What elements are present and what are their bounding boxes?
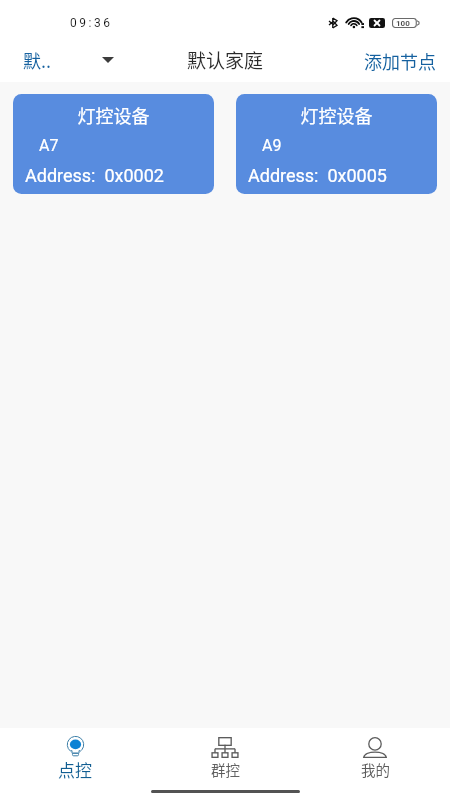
other: Select home bbox=[102, 57, 114, 63]
button[interactable]: 灯控设备 bbox=[13, 94, 214, 194]
staticText: 我的 bbox=[361, 759, 390, 780]
staticText: 添加节点 bbox=[364, 48, 436, 72]
button[interactable]: 添加节点 bbox=[350, 40, 450, 82]
staticText: A7 bbox=[39, 136, 59, 155]
staticText: 100 bbox=[396, 19, 410, 28]
staticText: Address: 0x0002 bbox=[25, 165, 164, 186]
button[interactable]: 默.. bbox=[0, 48, 126, 74]
button[interactable]: 我的 bbox=[300, 728, 450, 780]
staticText: A9 bbox=[262, 136, 282, 155]
staticText: 灯控设备 bbox=[236, 102, 437, 128]
staticText: 默.. bbox=[23, 47, 52, 73]
staticText: 灯控设备 bbox=[13, 102, 214, 128]
staticText: Address: 0x0005 bbox=[248, 165, 387, 186]
staticText: 09:36 bbox=[70, 16, 113, 30]
button[interactable]: 群控 bbox=[150, 728, 300, 780]
staticText: 点控 bbox=[58, 757, 92, 782]
staticText: 默认家庭 bbox=[187, 46, 264, 74]
staticText: 群控 bbox=[211, 759, 240, 780]
button[interactable]: 灯控设备 bbox=[236, 94, 437, 194]
button[interactable]: 点控 bbox=[0, 728, 150, 780]
